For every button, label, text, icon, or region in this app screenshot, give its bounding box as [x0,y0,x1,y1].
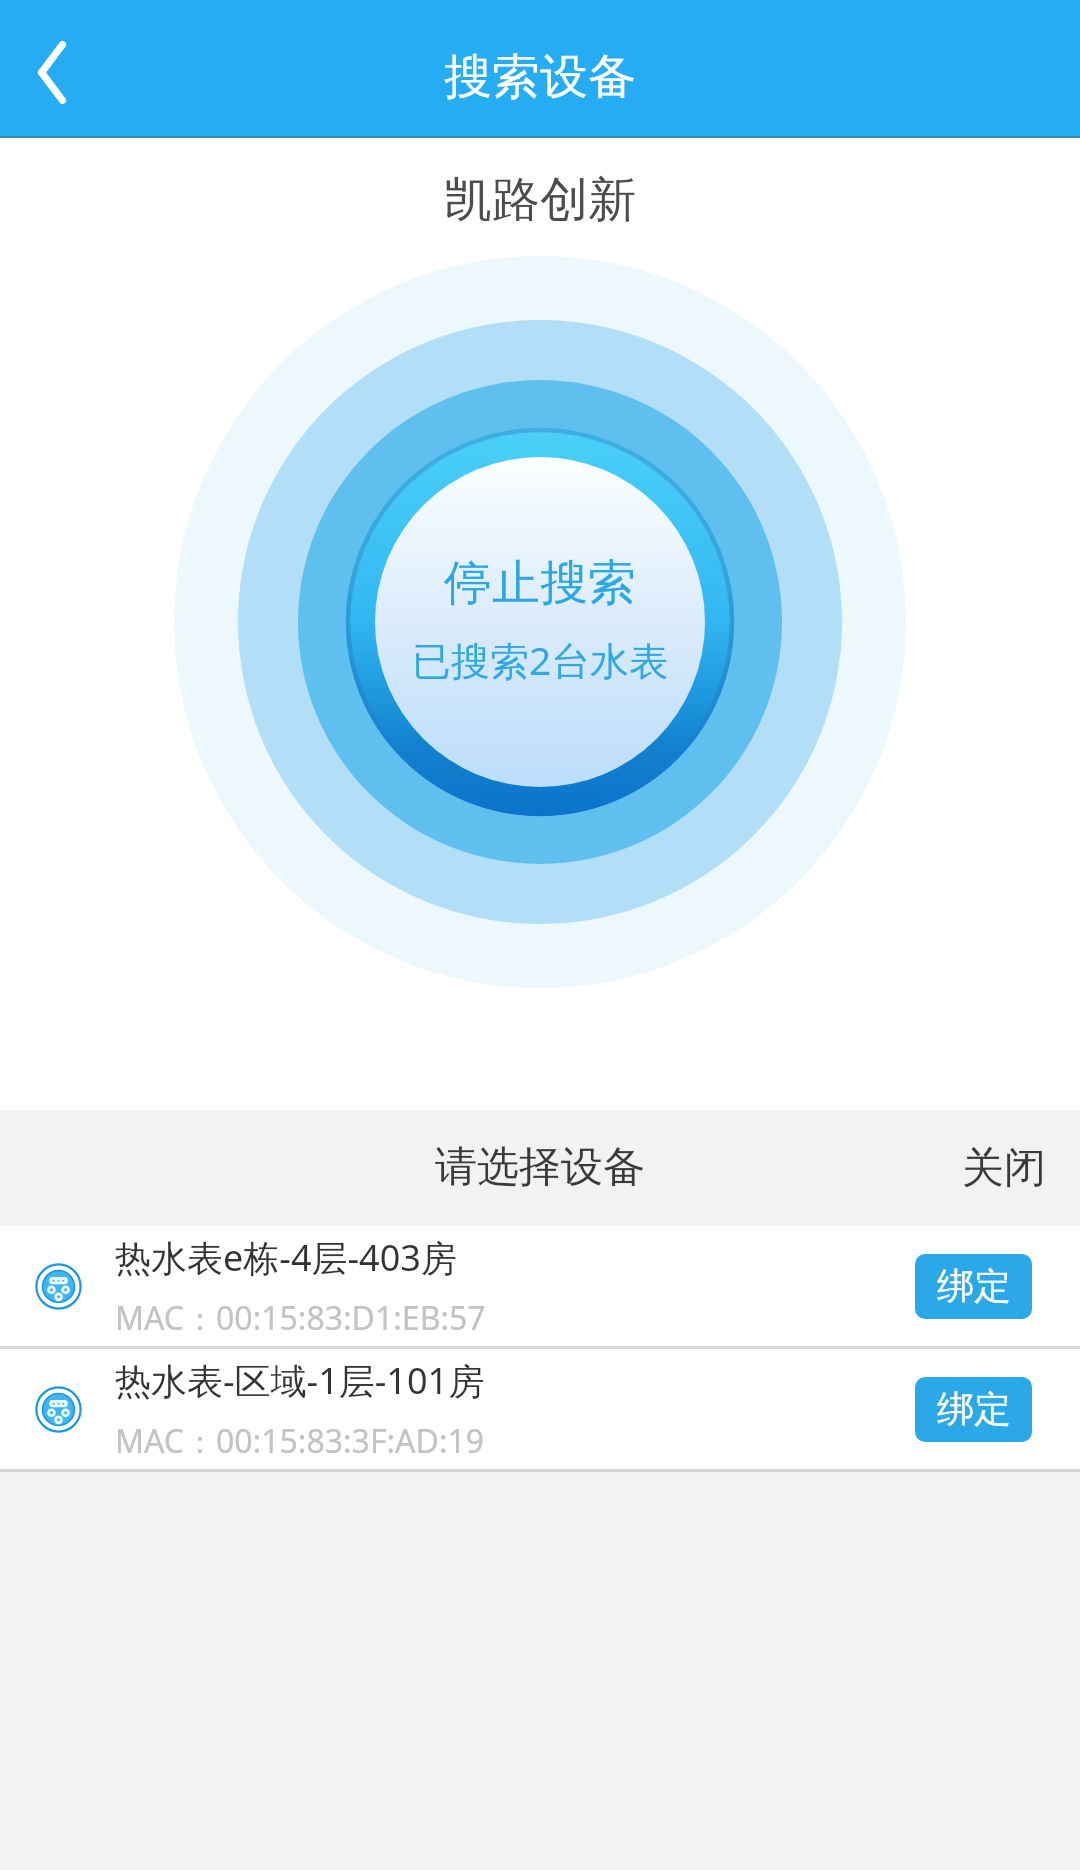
staticText: 热水表e栋-4层-403房 [115,1233,457,1282]
staticText: 绑定 [937,1263,1011,1310]
button[interactable]: 绑定 [915,1254,1032,1319]
staticText: 已搜索2台水表 [412,633,669,686]
staticText: 凯路创新 [444,170,636,230]
staticText: 绑定 [937,1386,1011,1433]
button[interactable]: 停止搜索 [370,553,710,686]
staticText: 关闭 [962,1142,1046,1195]
staticText: 停止搜索 [444,553,636,613]
staticText: 热水表-区域-1层-101房 [115,1356,485,1405]
button[interactable]: Back [0,0,118,134]
button[interactable]: 关闭 [928,1110,1080,1226]
staticText: 请选择设备 [435,1141,645,1194]
button[interactable]: 绑定 [915,1377,1032,1442]
button[interactable]: 热水表-区域-1层-101房 [0,1349,1080,1469]
button[interactable]: 热水表e栋-4层-403房 [0,1226,1080,1346]
staticText: MAC：00:15:83:D1:EB:57 [115,1296,486,1340]
staticText: MAC：00:15:83:3F:AD:19 [115,1419,485,1463]
staticText: 搜索设备 [444,47,636,107]
